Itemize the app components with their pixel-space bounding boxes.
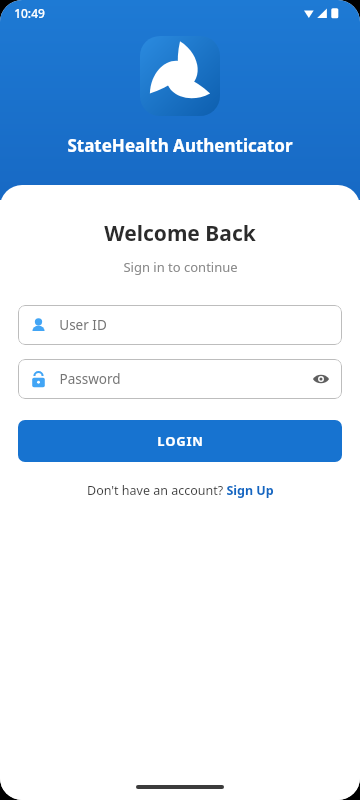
button[interactable]: Don't have an account? Sign Up xyxy=(87,482,274,499)
button[interactable]: Show password xyxy=(312,370,330,388)
staticText: Sign in to continue xyxy=(123,258,238,276)
staticText: Welcome Back xyxy=(104,219,256,248)
button[interactable]: LOGIN xyxy=(18,420,342,462)
staticText: 10:49 xyxy=(14,5,45,21)
staticText: Don't have an account? Sign Up xyxy=(87,482,274,499)
staticText: StateHealth Authenticator xyxy=(67,134,293,157)
staticText: User ID xyxy=(59,316,107,334)
button[interactable]: User ID xyxy=(18,305,342,345)
staticText: Password xyxy=(59,370,121,388)
button[interactable]: Password xyxy=(18,359,342,399)
staticText: LOGIN xyxy=(157,432,204,450)
